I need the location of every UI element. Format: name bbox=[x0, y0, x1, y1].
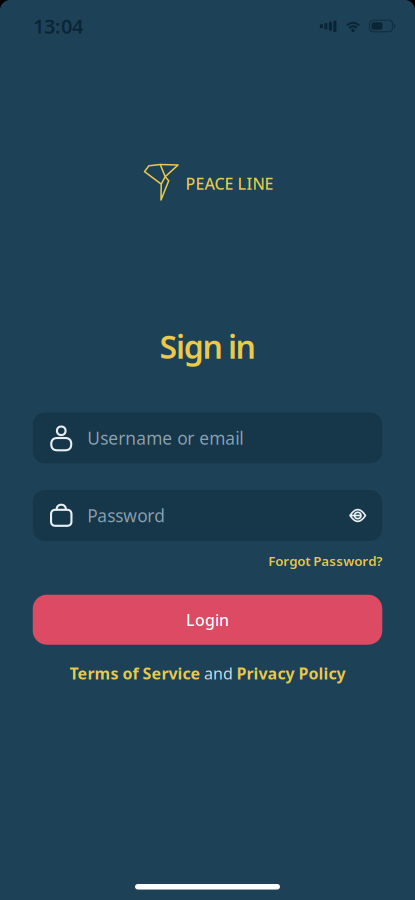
button[interactable]: Privacy Policy bbox=[236, 663, 345, 684]
staticText: Login bbox=[186, 609, 229, 630]
button[interactable]: Terms of Service bbox=[69, 663, 200, 684]
staticText: PEACE LINE bbox=[185, 173, 273, 194]
button[interactable]: Username or email bbox=[33, 412, 382, 463]
staticText: Terms of Service bbox=[69, 663, 200, 684]
staticText: Privacy Policy bbox=[236, 663, 345, 684]
button[interactable]: Login bbox=[33, 595, 382, 645]
staticText: Forgot Password? bbox=[268, 552, 382, 570]
button[interactable]: Show password bbox=[349, 508, 382, 523]
staticText: and bbox=[204, 663, 233, 684]
staticText: Username or email bbox=[87, 426, 243, 449]
staticText: Password bbox=[87, 504, 165, 527]
button[interactable]: Password bbox=[33, 490, 382, 541]
staticText: 13:04 bbox=[33, 13, 83, 39]
button[interactable]: Forgot Password? bbox=[268, 552, 382, 570]
staticText: Sign in bbox=[159, 325, 256, 367]
